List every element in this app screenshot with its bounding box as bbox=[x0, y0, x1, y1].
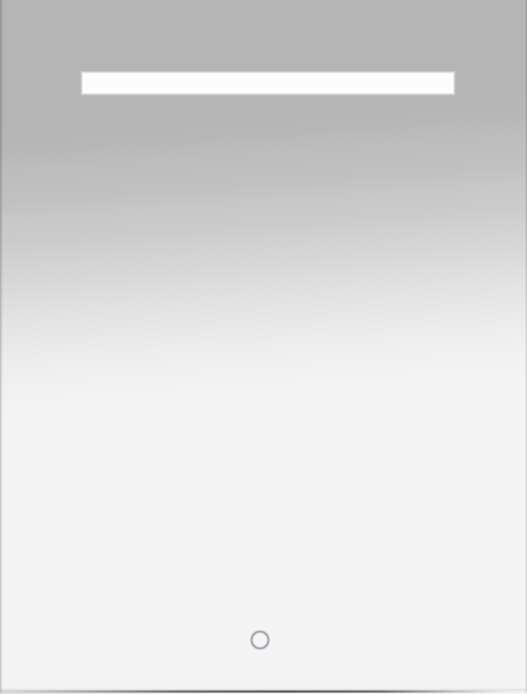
button[interactable]: LED light bar bbox=[82, 72, 454, 94]
button[interactable]: Power touch sensor bbox=[246, 626, 274, 654]
